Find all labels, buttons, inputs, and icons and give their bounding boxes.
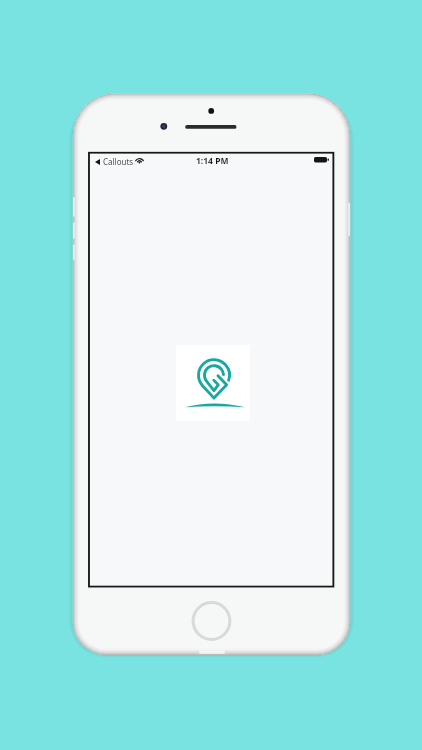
other: Wi-Fi signal (135, 156, 144, 163)
button[interactable]: Callouts app logo (176, 345, 250, 421)
other: Battery full (314, 157, 329, 164)
button[interactable]: Callouts (94, 155, 132, 168)
staticText: 1:14 PM (196, 155, 229, 167)
staticText: Callouts (103, 156, 134, 167)
